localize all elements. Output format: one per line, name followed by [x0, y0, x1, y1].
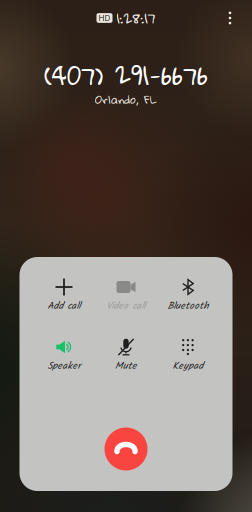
staticText: Add call — [47, 298, 80, 314]
staticText: 1:28:17 — [116, 5, 155, 31]
staticText: Keypad — [172, 358, 203, 374]
staticText: HD — [98, 13, 110, 23]
staticText: Orlando, FL — [95, 88, 157, 110]
button[interactable]: Speaker — [33, 333, 95, 375]
button[interactable]: End call — [96, 419, 156, 479]
button[interactable]: More options — [216, 6, 244, 30]
button[interactable]: Add call — [33, 273, 95, 315]
staticText: (407) 291-6676 — [44, 51, 208, 99]
button[interactable]: Bluetooth — [157, 273, 219, 315]
staticText: Video call — [106, 298, 145, 314]
button[interactable]: Mute — [95, 333, 157, 375]
staticText: Mute — [115, 358, 137, 374]
button[interactable]: Video call — [95, 273, 157, 315]
button[interactable]: Keypad — [157, 333, 219, 375]
staticText: Speaker — [47, 358, 80, 374]
staticText: Bluetooth — [167, 298, 208, 314]
